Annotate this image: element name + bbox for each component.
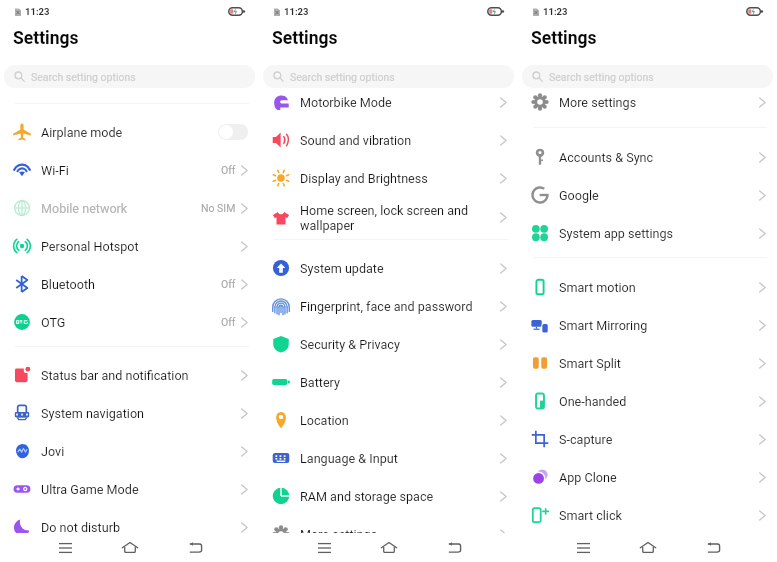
staticText: Google [559, 188, 599, 203]
staticText: Fingerprint, face and password [300, 299, 473, 314]
staticText: System update [300, 261, 384, 276]
button[interactable]: Back [694, 537, 732, 558]
staticText: Off [221, 278, 236, 290]
button[interactable]: Do not disturb [0, 508, 259, 546]
button[interactable]: Security & Privacy [259, 325, 518, 363]
staticText: Ultra Game Mode [41, 482, 139, 497]
staticText: Display and Brightness [300, 171, 428, 186]
staticText: Status bar and notification [41, 368, 189, 383]
staticText: Motorbike Mode [300, 95, 392, 110]
button[interactable]: Search setting options [263, 65, 514, 88]
button[interactable]: OTG [0, 303, 259, 341]
button[interactable]: Jovi [0, 432, 259, 470]
staticText: Settings [13, 28, 79, 49]
button[interactable]: Battery [259, 363, 518, 401]
staticText: wallpaper [300, 218, 355, 233]
staticText: Search setting options [290, 71, 395, 83]
staticText: Language & Input [300, 451, 398, 466]
staticText: Home screen, lock screen and [300, 203, 469, 218]
staticText: Security & Privacy [300, 337, 400, 352]
button[interactable]: Wi-Fi [0, 151, 259, 189]
button[interactable]: System update [259, 249, 518, 287]
button[interactable]: Search setting options [522, 65, 773, 88]
button[interactable]: Mobile network [0, 189, 259, 227]
staticText: RAM and storage space [300, 489, 434, 504]
staticText: Do not disturb [41, 520, 121, 535]
button[interactable]: Fingerprint, face and password [259, 287, 518, 325]
staticText: Jovi [41, 444, 65, 459]
button[interactable]: Google [518, 176, 777, 214]
staticText: Location [300, 413, 349, 428]
staticText: 11:23 [543, 6, 568, 17]
staticText: S-capture [559, 432, 613, 447]
button[interactable]: Recent apps [46, 537, 84, 558]
button[interactable]: Smart click [518, 496, 777, 534]
button[interactable]: System app settings [518, 214, 777, 252]
button[interactable]: Smart Mirroring [518, 306, 777, 344]
staticText: No SIM [201, 202, 236, 214]
staticText: Accounts & Sync [559, 150, 654, 165]
button[interactable]: More settings [259, 515, 518, 553]
button[interactable]: Home screen, lock screen and [259, 197, 518, 238]
staticText: Bluetooth [41, 277, 95, 292]
button[interactable]: Bluetooth [0, 265, 259, 303]
staticText: Smart motion [559, 280, 636, 295]
staticText: One-handed [559, 394, 627, 409]
button[interactable]: One-handed [518, 382, 777, 420]
button[interactable]: Accounts & Sync [518, 138, 777, 176]
button[interactable]: Smart motion [518, 268, 777, 306]
staticText: OTG [41, 315, 66, 330]
button[interactable]: Sound and vibration [259, 121, 518, 159]
staticText: Smart click [559, 508, 622, 523]
button[interactable]: Home [370, 537, 408, 558]
button[interactable]: Airplane mode switch [218, 124, 248, 140]
staticText: Airplane mode [41, 125, 123, 140]
staticText: Battery [300, 375, 340, 390]
button[interactable]: Home [111, 537, 149, 558]
button[interactable]: S-capture [518, 420, 777, 458]
button[interactable]: Back [435, 537, 473, 558]
button[interactable]: RAM and storage space [259, 477, 518, 515]
staticText: 11:23 [25, 6, 50, 17]
button[interactable]: Airplane mode [0, 113, 259, 151]
staticText: Wi-Fi [41, 163, 69, 178]
staticText: System navigation [41, 406, 145, 421]
staticText: Sound and vibration [300, 133, 412, 148]
button[interactable]: Personal Hotspot [0, 227, 259, 265]
staticText: Off [221, 164, 236, 176]
staticText: Settings [531, 28, 597, 49]
button[interactable]: System navigation [0, 394, 259, 432]
button[interactable]: Smart Split [518, 344, 777, 382]
staticText: Mobile network [41, 201, 128, 216]
button[interactable]: Language & Input [259, 439, 518, 477]
button[interactable]: Home [629, 537, 667, 558]
button[interactable]: Recent apps [564, 537, 602, 558]
button[interactable]: Motorbike Mode [259, 83, 518, 121]
button[interactable]: Back [176, 537, 214, 558]
staticText: More settings [300, 527, 378, 542]
button[interactable]: Ultra Game Mode [0, 470, 259, 508]
staticText: Search setting options [549, 71, 654, 83]
staticText: 11:23 [284, 6, 309, 17]
button[interactable]: Recent apps [305, 537, 343, 558]
staticText: More settings [559, 95, 637, 110]
staticText: Personal Hotspot [41, 239, 139, 254]
button[interactable]: More settings [518, 83, 777, 121]
staticText: App Clone [559, 470, 617, 485]
staticText: Search setting options [31, 71, 136, 83]
staticText: Smart Split [559, 356, 621, 371]
button[interactable]: Status bar and notification [0, 356, 259, 394]
button[interactable]: Location [259, 401, 518, 439]
staticText: Smart Mirroring [559, 318, 648, 333]
button[interactable]: Search setting options [4, 65, 255, 88]
staticText: System app settings [559, 226, 674, 241]
button[interactable]: Display and Brightness [259, 159, 518, 197]
button[interactable]: App Clone [518, 458, 777, 496]
staticText: Off [221, 316, 236, 328]
staticText: Settings [272, 28, 338, 49]
